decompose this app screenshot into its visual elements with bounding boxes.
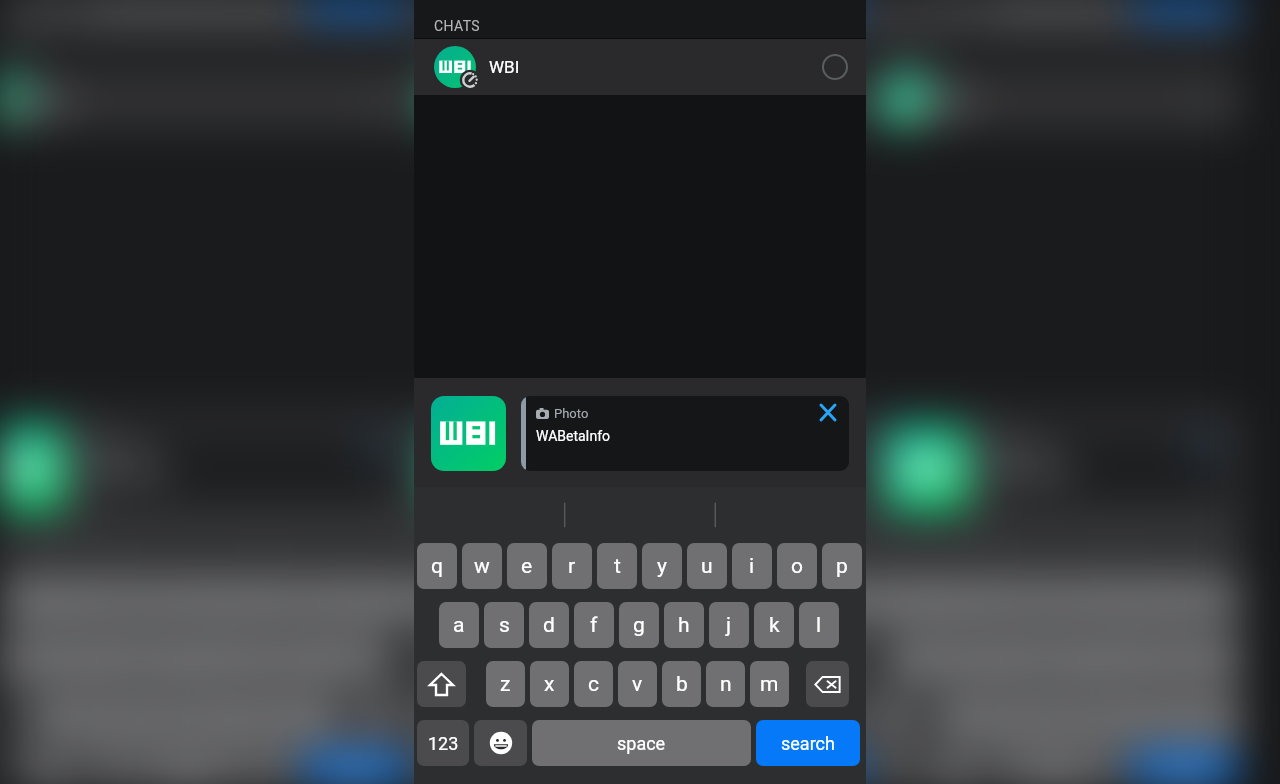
button[interactable]: q [0, 577, 5, 623]
button[interactable]: i [732, 577, 772, 623]
button[interactable]: k [1206, 636, 1239, 682]
button[interactable] [431, 425, 517, 511]
button[interactable]: o [1229, 577, 1239, 623]
button[interactable]: Photo [521, 396, 849, 471]
button[interactable]: n [706, 695, 745, 741]
button[interactable]: z [938, 695, 977, 741]
button[interactable]: Shift [417, 661, 466, 707]
button[interactable]: j [709, 636, 749, 682]
button[interactable]: b [662, 661, 701, 707]
button[interactable]: h [664, 636, 704, 682]
button[interactable]: n [1158, 695, 1197, 741]
button[interactable]: a [439, 602, 479, 648]
button[interactable]: g [619, 602, 659, 648]
button[interactable]: space [532, 754, 751, 784]
button[interactable]: u [687, 543, 727, 589]
button[interactable]: Photo [984, 430, 1225, 505]
button[interactable]: f [574, 602, 614, 648]
button[interactable]: r [552, 577, 592, 623]
button[interactable]: search [1132, 0, 1236, 16]
button[interactable]: y [190, 577, 230, 623]
button[interactable]: x [530, 695, 569, 741]
button[interactable]: w [462, 577, 502, 623]
button[interactable]: z [486, 661, 525, 707]
button[interactable]: l [799, 636, 839, 682]
button[interactable]: u [1139, 577, 1179, 623]
button[interactable]: k [754, 602, 794, 648]
button[interactable]: Emoji [22, 754, 75, 784]
button[interactable]: m [1202, 695, 1239, 741]
button[interactable]: z [34, 695, 73, 741]
button[interactable]: Backspace [806, 661, 849, 707]
button[interactable]: t [145, 577, 185, 623]
button[interactable]: t [1049, 577, 1089, 623]
button[interactable]: space [984, 754, 1127, 784]
button[interactable]: o [777, 543, 817, 589]
button[interactable]: c [574, 695, 613, 741]
button[interactable]: Emoji [474, 754, 527, 784]
button[interactable]: m [298, 695, 337, 741]
button[interactable]: Photo [532, 430, 849, 505]
button[interactable]: e [507, 577, 547, 623]
button[interactable]: WBI [414, 73, 866, 129]
button[interactable]: f [574, 636, 614, 682]
button[interactable]: r [1004, 577, 1044, 623]
button[interactable]: j [709, 602, 749, 648]
button[interactable]: s [484, 602, 524, 648]
button[interactable]: a [439, 636, 479, 682]
button[interactable]: u [235, 577, 275, 623]
button[interactable]: y [642, 577, 682, 623]
button[interactable]: Shift [0, 695, 14, 741]
button[interactable]: 123 [417, 754, 469, 784]
button[interactable]: v [618, 695, 657, 741]
button[interactable]: e [507, 543, 547, 589]
button[interactable]: 123 [869, 0, 921, 16]
button[interactable]: q [869, 577, 909, 623]
button[interactable]: n [706, 661, 745, 707]
button[interactable]: search [756, 754, 860, 784]
button[interactable]: c [574, 661, 613, 707]
button[interactable]: h [664, 602, 704, 648]
button[interactable]: o [777, 577, 817, 623]
button[interactable]: r [552, 543, 592, 589]
button[interactable]: z [486, 695, 525, 741]
button[interactable] [883, 425, 969, 511]
button[interactable]: 123 [869, 754, 921, 784]
button[interactable]: WBI [866, 73, 1242, 129]
button[interactable]: space [80, 754, 299, 784]
button[interactable]: Remove attachment [814, 398, 842, 426]
button[interactable]: b [1114, 695, 1153, 741]
button[interactable]: b [662, 695, 701, 741]
button[interactable]: p [370, 577, 410, 623]
button[interactable]: Photo [80, 430, 397, 505]
button[interactable]: e [55, 577, 95, 623]
button[interactable]: p [822, 577, 862, 623]
button[interactable]: d [529, 636, 569, 682]
button[interactable]: a [0, 636, 27, 682]
button[interactable]: i [732, 543, 772, 589]
